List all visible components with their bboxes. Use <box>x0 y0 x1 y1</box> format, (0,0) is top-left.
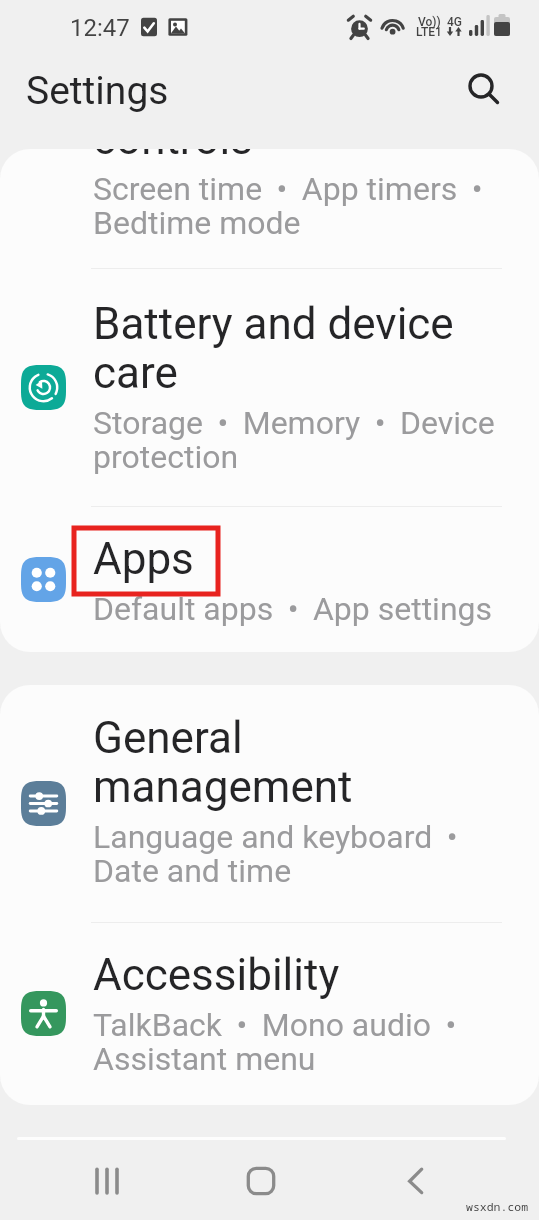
staticText: Accessibility <box>93 951 340 1000</box>
staticText: Storage • Memory • Device protection <box>93 407 503 475</box>
button[interactable] <box>0 149 539 268</box>
staticText: TalkBack • Mono audio • Assistant menu <box>93 1009 503 1077</box>
staticText: controls <box>93 149 253 164</box>
staticText: Settings <box>26 68 169 114</box>
button[interactable]: Back <box>377 1143 453 1219</box>
staticText: 4G <box>447 15 462 29</box>
staticText: General management <box>93 714 503 812</box>
button[interactable]: Home <box>223 1143 299 1219</box>
button[interactable] <box>0 268 539 506</box>
button[interactable] <box>0 922 539 1105</box>
button[interactable]: Search <box>461 66 505 110</box>
staticText: 12:47 <box>70 14 130 42</box>
staticText: Battery and device care <box>93 300 503 398</box>
staticText: Screen time • App timers • Bedtime mode <box>93 173 503 241</box>
staticText: LTE1 <box>416 25 442 39</box>
button[interactable] <box>0 685 539 922</box>
button[interactable] <box>0 506 539 652</box>
staticText: Language and keyboard • Date and time <box>93 821 503 889</box>
staticText: Default apps • App settings <box>93 593 493 627</box>
staticText: Vo)) <box>418 15 441 29</box>
staticText: Apps <box>93 535 194 584</box>
staticText: wsxdn.com <box>466 1198 529 1214</box>
button[interactable]: Recent apps <box>69 1143 145 1219</box>
